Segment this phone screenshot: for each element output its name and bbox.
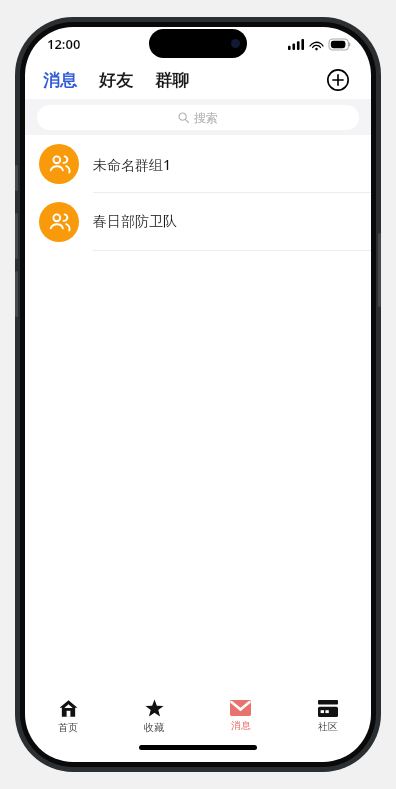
button[interactable]: 消息 xyxy=(197,692,284,740)
staticText: 12:00 xyxy=(47,35,81,53)
button[interactable]: 收藏 xyxy=(111,692,197,740)
staticText: 好友 xyxy=(99,70,133,91)
staticText: 首页 xyxy=(58,721,78,734)
button[interactable]: 社区 xyxy=(284,692,371,740)
staticText: 社区 xyxy=(318,720,338,733)
staticText: 收藏 xyxy=(144,721,164,734)
button[interactable]: 春日部防卫队 xyxy=(25,193,371,251)
staticText: 搜索 xyxy=(194,110,218,125)
staticText: 春日部防卫队 xyxy=(93,213,177,231)
button[interactable]: 搜索 xyxy=(37,105,359,130)
button[interactable]: 群聊 xyxy=(151,68,193,93)
staticText: 消息 xyxy=(231,719,251,732)
staticText: 群聊 xyxy=(155,70,189,91)
button[interactable]: 未命名群组1 xyxy=(25,135,371,193)
staticText: 未命名群组1 xyxy=(93,155,172,174)
button[interactable]: 消息 xyxy=(39,68,81,93)
button[interactable]: 首页 xyxy=(25,692,111,740)
staticText: 消息 xyxy=(43,70,77,91)
button[interactable]: New xyxy=(321,63,355,97)
button[interactable]: 好友 xyxy=(95,68,137,93)
